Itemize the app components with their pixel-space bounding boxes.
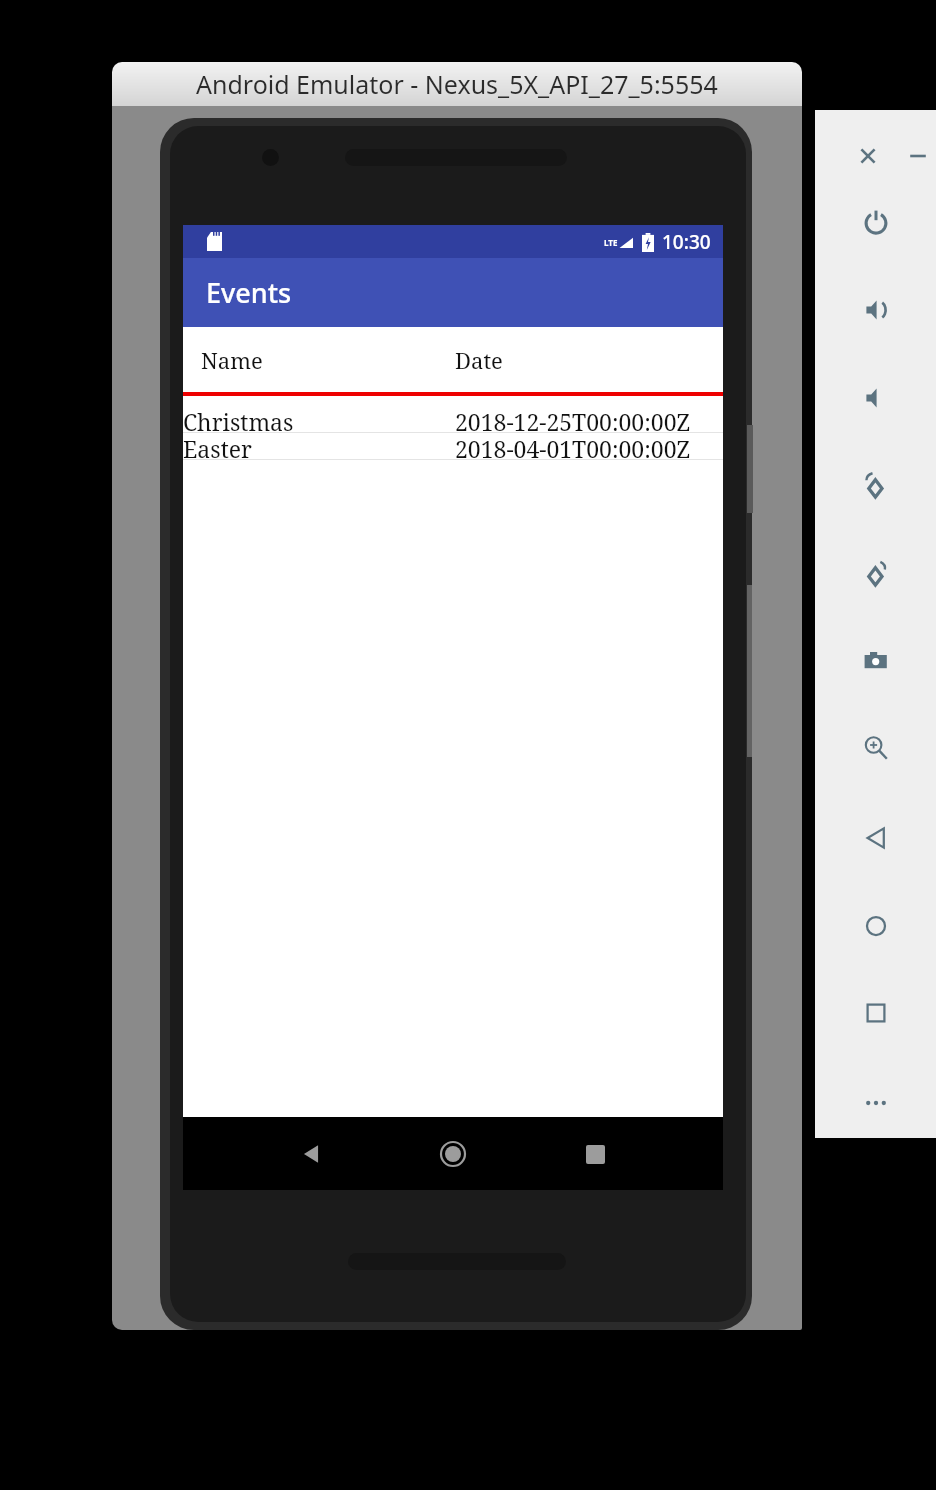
button[interactable]: Close [850,138,886,174]
button[interactable]: Power [858,204,894,240]
button[interactable]: More [858,1085,894,1121]
button[interactable]: Rotate right [858,556,894,592]
staticText: LTE [604,237,618,248]
button[interactable]: Christmas [183,406,723,433]
button[interactable]: Home [858,908,894,944]
button[interactable]: Screenshot [858,643,894,679]
staticText: 2018-12-25T00:00:00Z [455,406,691,432]
staticText: Date [455,345,503,375]
button[interactable]: Back [858,820,894,856]
button[interactable]: Zoom [858,730,894,766]
button[interactable]: Volume up [858,292,894,328]
staticText: Events [206,274,292,311]
staticText: Android Emulator - Nexus_5X_API_27_5:555… [196,67,718,101]
button[interactable]: Back [287,1130,335,1178]
button[interactable]: Rotate left [858,468,894,504]
staticText: Name [201,345,263,375]
button[interactable]: Events [183,258,723,327]
staticText: Easter [183,433,252,459]
button[interactable]: Minimise [900,138,936,174]
button[interactable]: Overview [858,995,894,1031]
button[interactable]: Easter [183,433,723,460]
button[interactable]: Home [429,1130,477,1178]
staticText: Christmas [183,406,294,432]
button[interactable]: Volume down [858,380,894,416]
staticText: 2018-04-01T00:00:00Z [455,433,691,459]
button[interactable]: Recent apps [571,1130,619,1178]
staticText: 10:30 [662,229,711,255]
